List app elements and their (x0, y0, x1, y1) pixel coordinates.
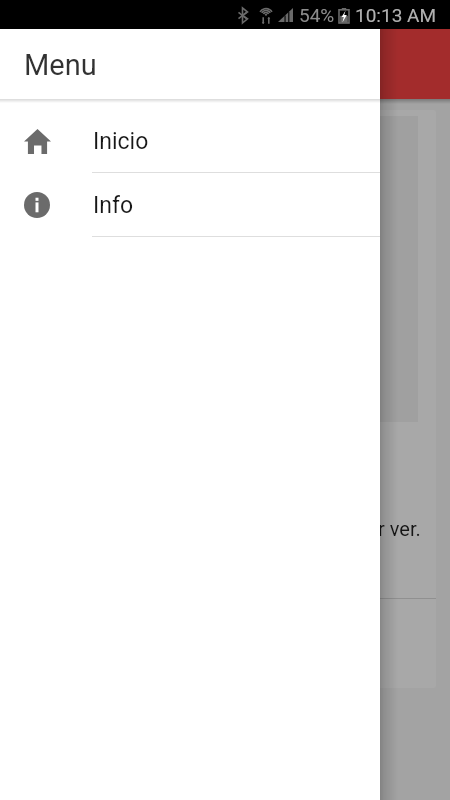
other: Home (24, 129, 51, 154)
button[interactable]: Home (0, 109, 380, 173)
staticText: Info (93, 192, 134, 219)
staticText: Menu (24, 48, 97, 82)
other: Info (24, 192, 50, 218)
button[interactable]: Info (0, 173, 380, 237)
staticText: 10:13 AM (355, 4, 437, 26)
staticText: Pulsa el icono de la barra superior o de… (30, 464, 421, 541)
staticText: Inicio (93, 128, 149, 155)
staticText: 54% (299, 4, 335, 26)
